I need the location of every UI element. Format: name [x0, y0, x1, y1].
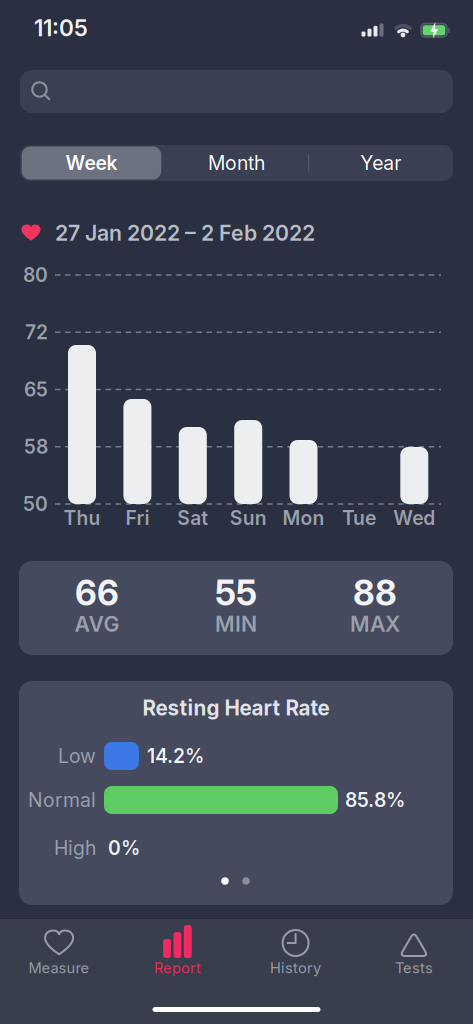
staticText: 85.8% [345, 788, 405, 812]
staticText: 55 [215, 572, 257, 614]
staticText: Wed [393, 506, 435, 530]
staticText: Report [154, 959, 201, 977]
staticText: Mon [282, 506, 324, 530]
staticText: Normal [28, 788, 96, 812]
staticText: Year [360, 151, 401, 175]
staticText: Low [58, 744, 96, 768]
staticText: Thu [63, 506, 100, 530]
button[interactable]: Search [20, 70, 453, 113]
staticText: Resting Heart Rate [142, 695, 329, 720]
staticText: 27 Jan 2022 – 2 Feb 2022 [55, 220, 315, 246]
button[interactable]: Measure [14, 919, 104, 991]
staticText: 0% [108, 836, 140, 860]
staticText: 72 [25, 321, 48, 344]
staticText: 11:05 [34, 14, 88, 42]
button[interactable]: Page 1 [221, 877, 229, 885]
button[interactable]: History [251, 919, 341, 991]
staticText: Fri [125, 506, 149, 530]
button[interactable]: Report [132, 919, 222, 991]
staticText: Sat [177, 506, 208, 530]
staticText: MIN [215, 611, 257, 637]
staticText: MAX [350, 611, 400, 637]
button[interactable]: Month [166, 146, 306, 179]
staticText: 80 [23, 263, 48, 287]
button[interactable]: Tests [369, 919, 459, 991]
staticText: 65 [24, 378, 48, 401]
staticText: 14.2% [147, 744, 204, 768]
staticText: Measure [29, 959, 90, 977]
staticText: Week [65, 151, 117, 175]
button[interactable]: Page 2 [242, 877, 250, 885]
staticText: High [54, 836, 96, 860]
staticText: 50 [23, 492, 48, 516]
staticText: Tue [342, 506, 376, 530]
button[interactable]: Week [22, 146, 161, 179]
staticText: Tests [395, 959, 433, 977]
staticText: History [270, 959, 321, 977]
staticText: Sun [230, 506, 267, 530]
staticText: 66 [75, 572, 119, 614]
staticText: 88 [353, 572, 397, 614]
staticText: Month [208, 151, 265, 175]
staticText: AVG [74, 611, 119, 637]
button[interactable]: Year [311, 146, 451, 179]
staticText: 58 [24, 435, 48, 458]
